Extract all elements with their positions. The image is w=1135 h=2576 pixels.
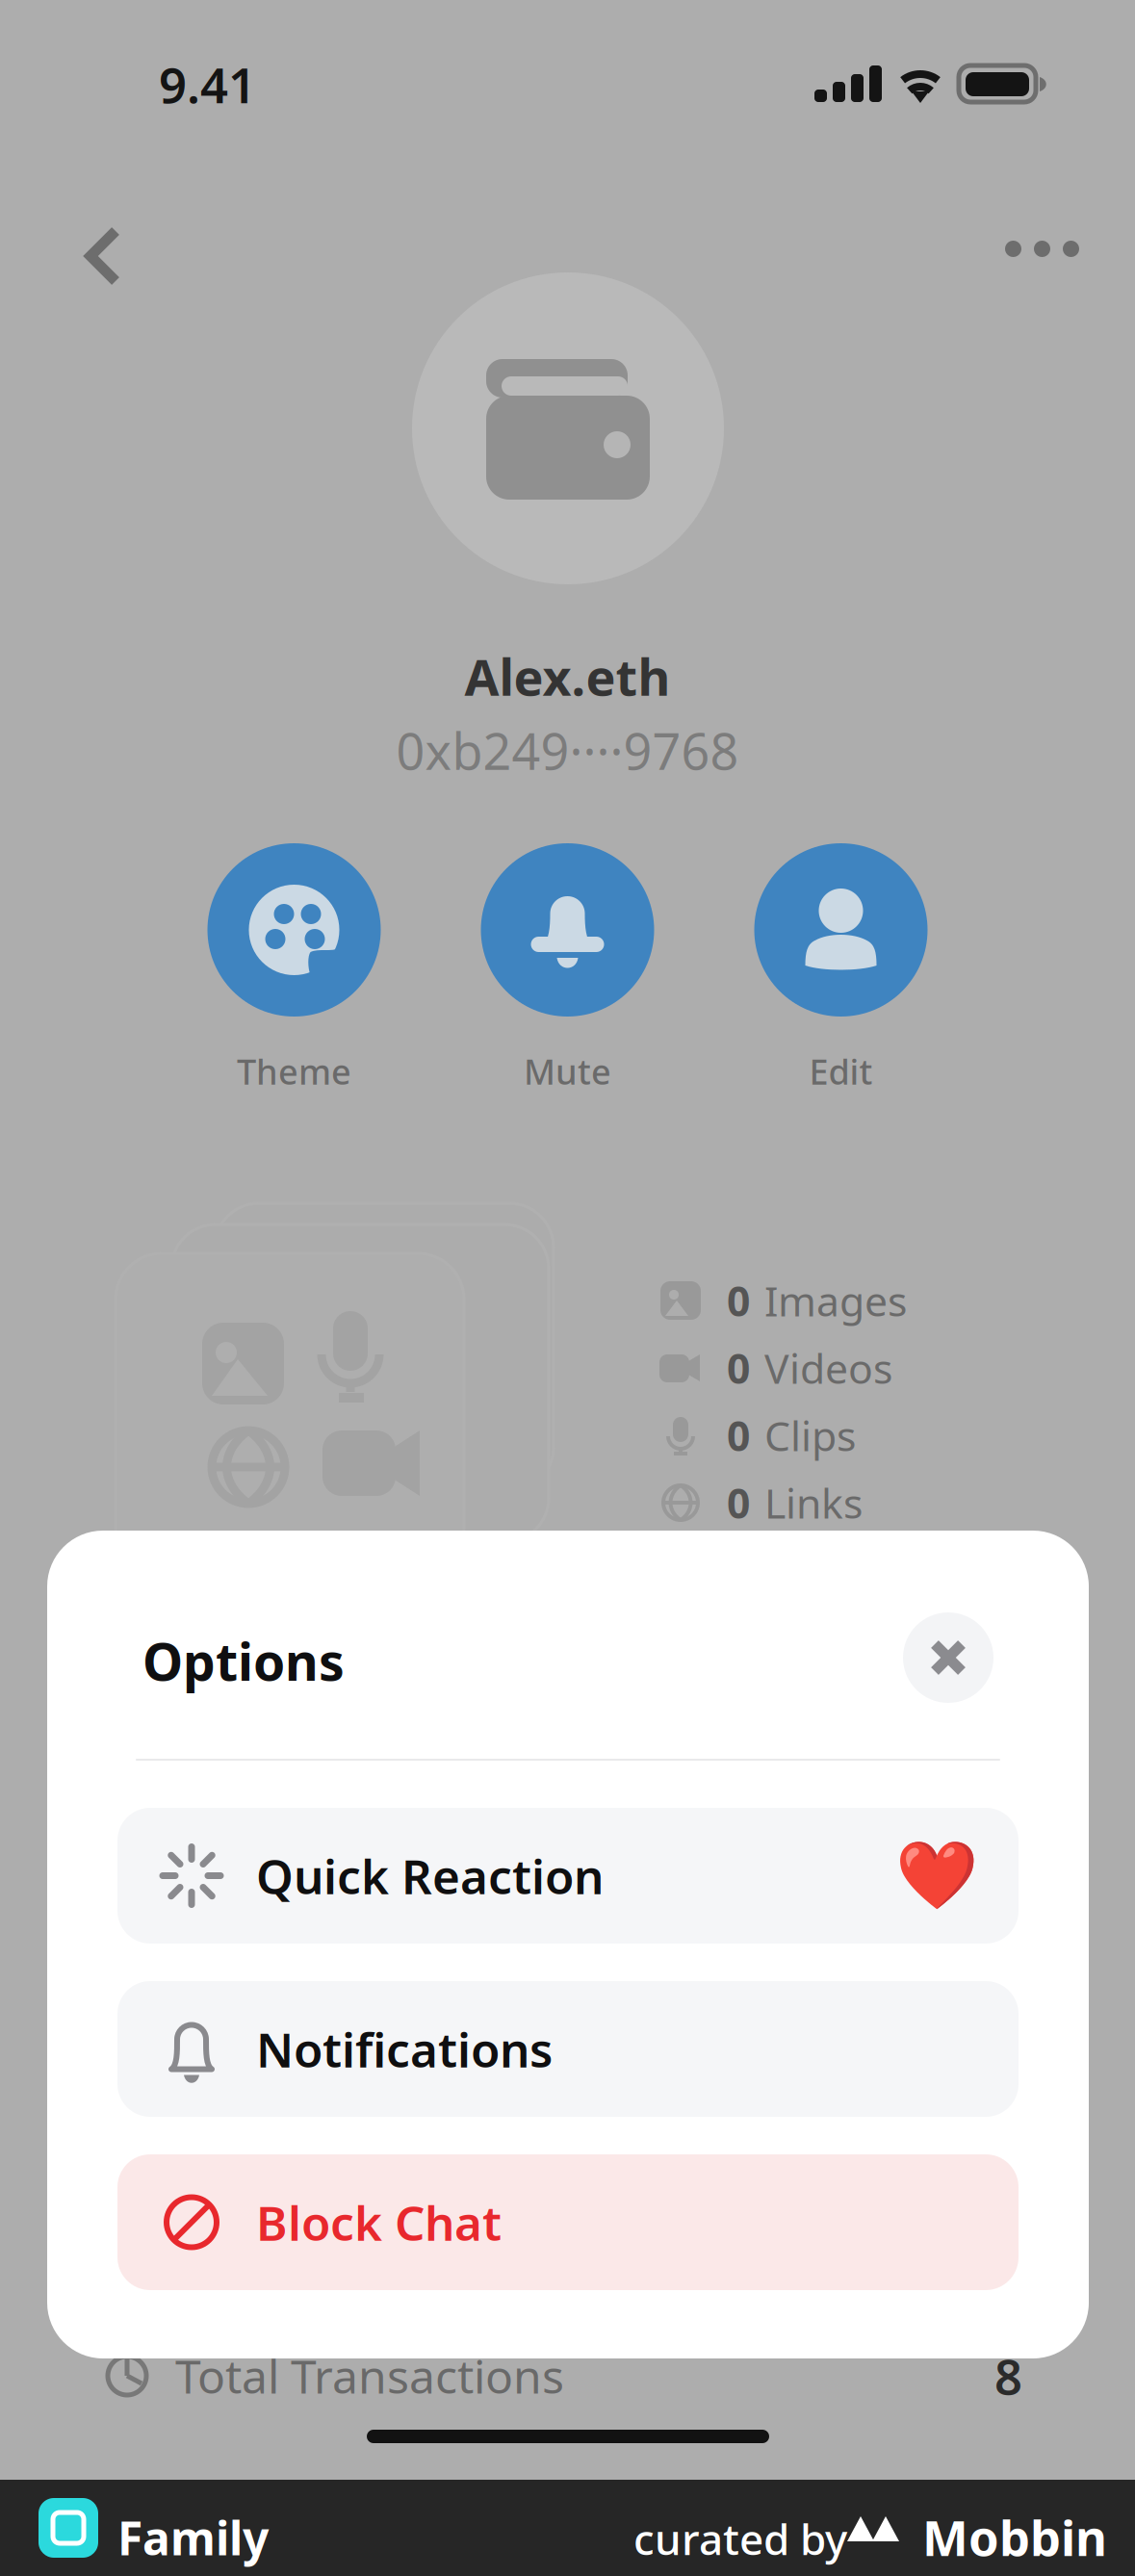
staticText: ❤️ (895, 1838, 978, 1914)
staticText: 0 (727, 1341, 750, 1395)
staticText: Family (117, 2507, 269, 2568)
staticText: Videos (764, 1341, 892, 1395)
staticText: Block Chat (256, 2191, 502, 2254)
staticText: 0 (727, 1408, 750, 1463)
staticText: Theme (237, 1048, 351, 1094)
button[interactable]: Edit (725, 843, 956, 1094)
staticText: 0xb249····9768 (396, 717, 739, 784)
staticText: Images (764, 1273, 907, 1328)
staticText: curated by (633, 2511, 847, 2567)
staticText: Mute (524, 1048, 611, 1094)
button[interactable]: Theme (179, 843, 410, 1094)
staticText: Clips (764, 1408, 856, 1463)
staticText: Quick Reaction (256, 1844, 604, 1907)
staticText: 0 (727, 1475, 750, 1530)
staticText: Total Transactions (175, 2345, 564, 2406)
staticText: Mobbin (922, 2505, 1107, 2570)
staticText: 9.41 (159, 52, 256, 117)
staticText: Notifications (256, 2017, 553, 2080)
staticText: Options (142, 1627, 345, 1695)
staticText: Edit (809, 1048, 873, 1094)
button[interactable]: Back (60, 200, 152, 312)
staticText: 0 (727, 1273, 750, 1328)
button[interactable]: Quick Reaction (117, 1808, 1019, 1944)
staticText: Alex.eth (464, 643, 671, 710)
staticText: Links (764, 1475, 863, 1530)
button[interactable]: More (982, 218, 1102, 280)
button[interactable]: Notifications (117, 1981, 1019, 2117)
button[interactable]: Mute (452, 843, 683, 1094)
staticText: 8 (994, 2343, 1022, 2408)
button[interactable]: Close (903, 1612, 993, 1703)
button[interactable]: Block Chat (117, 2154, 1019, 2290)
